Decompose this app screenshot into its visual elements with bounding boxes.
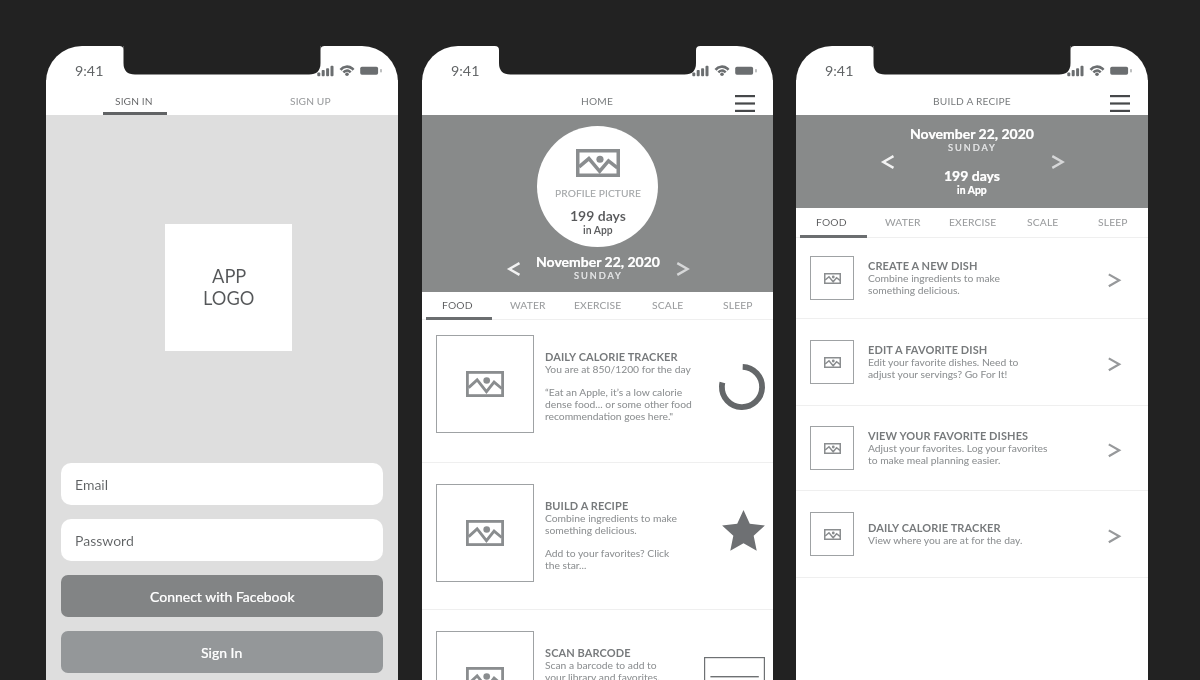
button[interactable]: FOOD	[422, 292, 493, 320]
button[interactable]: EXERCISE	[563, 292, 633, 320]
staticText: You are at 850/1200 for the day	[545, 363, 691, 375]
staticText: Adjust your favorites. Log your favorite…	[868, 442, 1048, 466]
staticText: SLEEP	[723, 299, 753, 311]
button[interactable]: Previous day	[875, 149, 901, 175]
button[interactable]: Previous day	[501, 256, 527, 282]
button[interactable]: Open	[1080, 238, 1148, 318]
staticText: Add to your favorites? Click the star...	[545, 547, 670, 571]
staticText: WATER	[885, 216, 921, 228]
staticText: DAILY CALORIE TRACKER	[868, 521, 1001, 534]
staticText: WATER	[510, 299, 546, 311]
button[interactable]: VIEW YOUR FAVORITE DISHES	[796, 406, 1148, 490]
staticText: View where you are at for the day.	[868, 534, 1023, 546]
staticText: 199 days	[944, 167, 1000, 184]
button[interactable]: Menu	[1106, 89, 1134, 117]
staticText: LOGO	[203, 287, 255, 309]
staticText: 9:41	[825, 62, 854, 79]
button[interactable]: Email	[61, 463, 383, 505]
button[interactable]: Open	[1080, 491, 1148, 577]
staticText: in App	[957, 184, 987, 196]
staticText: HOME	[581, 95, 614, 107]
staticText: Password	[75, 532, 134, 549]
staticText: November 22, 2020	[536, 253, 660, 270]
staticText: “Eat an Apple, it’s a low calorie dense …	[545, 386, 692, 422]
button[interactable]: WATER	[493, 292, 563, 320]
button[interactable]: Connect with Facebook	[61, 575, 383, 617]
button[interactable]: CREATE A NEW DISH	[796, 238, 1148, 318]
staticText: SUNDAY	[574, 270, 623, 281]
button[interactable]: SCALE	[1008, 208, 1078, 238]
staticText: Combine ingredients to make something de…	[545, 512, 677, 536]
button[interactable]: SIGN IN	[46, 80, 222, 115]
staticText: in App	[583, 224, 613, 236]
staticText: FOOD	[816, 216, 847, 228]
staticText: SCALE	[652, 299, 684, 311]
staticText: SCAN BARCODE	[545, 646, 631, 659]
staticText: Sign In	[201, 644, 243, 661]
button[interactable]: Password	[61, 519, 383, 561]
staticText: Edit your favorite dishes. Need to adjus…	[868, 356, 1019, 380]
staticText: Scan a barcode to add to your library an…	[545, 659, 660, 680]
staticText: EDIT A FAVORITE DISH	[868, 343, 988, 356]
staticText: SIGN IN	[115, 95, 153, 107]
button[interactable]: BUILD A RECIPE	[422, 463, 773, 609]
staticText: SIGN UP	[290, 95, 331, 107]
staticText: Combine ingredients to make something de…	[868, 272, 1000, 296]
staticText: 199 days	[570, 207, 626, 224]
button[interactable]: SLEEP	[703, 292, 773, 320]
staticText: DAILY CALORIE TRACKER	[545, 350, 678, 363]
button[interactable]: Sign In	[61, 631, 383, 673]
button[interactable]: WATER	[867, 208, 938, 238]
button[interactable]: SLEEP	[1078, 208, 1148, 238]
button[interactable]: Open	[1080, 319, 1148, 405]
staticText: EXERCISE	[949, 216, 997, 228]
staticText: Email	[75, 476, 109, 493]
staticText: BUILD A RECIPE	[933, 95, 1011, 107]
staticText: APP	[212, 265, 247, 287]
button[interactable]: EDIT A FAVORITE DISH	[796, 319, 1148, 405]
button[interactable]: Next day	[668, 256, 694, 282]
staticText: 9:41	[75, 62, 104, 79]
staticText: CREATE A NEW DISH	[868, 259, 978, 272]
button[interactable]: SCALE	[633, 292, 703, 320]
button[interactable]: EXERCISE	[938, 208, 1008, 238]
button[interactable]: Open	[1080, 406, 1148, 490]
button[interactable]: DAILY CALORIE TRACKER	[796, 491, 1148, 577]
staticText: 9:41	[451, 62, 480, 79]
staticText: FOOD	[442, 299, 473, 311]
button[interactable]: SIGN UP	[222, 80, 398, 115]
staticText: BUILD A RECIPE	[545, 499, 629, 512]
button[interactable]: Next day	[1043, 149, 1069, 175]
staticText: PROFILE PICTURE	[555, 187, 641, 199]
button[interactable]: FOOD	[796, 208, 867, 238]
staticText: EXERCISE	[574, 299, 622, 311]
staticText: SUNDAY	[948, 142, 997, 153]
staticText: Connect with Facebook	[150, 588, 295, 605]
button[interactable]: SCAN BARCODE	[422, 610, 773, 680]
button[interactable]: Menu	[731, 89, 759, 117]
staticText: VIEW YOUR FAVORITE DISHES	[868, 429, 1029, 442]
staticText: SLEEP	[1098, 216, 1128, 228]
staticText: November 22, 2020	[910, 125, 1034, 142]
staticText: SCALE	[1027, 216, 1059, 228]
button[interactable]: DAILY CALORIE TRACKER	[422, 320, 773, 462]
